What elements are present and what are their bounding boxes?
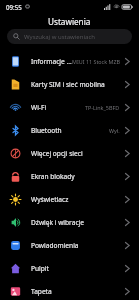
- button[interactable]: Informacje o telefonie: [0, 50, 139, 73]
- staticText: Ekran blokady: [31, 172, 124, 181]
- button[interactable]: Search: [7, 29, 132, 44]
- staticText: MIUI 11 Stock MZB: [72, 58, 120, 65]
- staticText: Bluetooth: [31, 126, 109, 135]
- staticText: Dźwięk i wibracje: [31, 218, 124, 227]
- staticText: Powiadomienia: [31, 241, 124, 250]
- staticText: Więcej opcji sieci: [31, 149, 124, 158]
- staticText: Wyszukaj w ustawieniach: [24, 33, 95, 41]
- staticText: Informacje o telefonie: [31, 57, 72, 66]
- button[interactable]: Dźwięk i wibracje: [0, 211, 139, 234]
- staticText: TP-Link_5BFD: [85, 104, 120, 111]
- button[interactable]: Wi-Fi: [0, 96, 139, 119]
- button[interactable]: Bluetooth: [0, 119, 139, 142]
- button[interactable]: Pulpit: [0, 257, 139, 280]
- staticText: Ustawienia: [48, 16, 91, 27]
- button[interactable]: Karty SIM i sieć mobilna: [0, 73, 139, 96]
- staticText: Wyświetlacz: [31, 195, 124, 204]
- staticText: Wył.: [109, 127, 120, 134]
- button[interactable]: Wyświetlacz: [0, 188, 139, 211]
- button[interactable]: Powiadomienia: [0, 234, 139, 257]
- staticText: 09:55: [6, 3, 22, 11]
- other: Search: [13, 33, 20, 40]
- staticText: Wi-Fi: [31, 103, 85, 112]
- staticText: Pulpit: [31, 264, 124, 273]
- other: Notification: [25, 4, 30, 9]
- button[interactable]: Ekran blokady: [0, 165, 139, 188]
- button[interactable]: Więcej opcji sieci: [0, 142, 139, 165]
- button[interactable]: Tapeta: [0, 280, 139, 300]
- staticText: Tapeta: [31, 287, 124, 296]
- staticText: Karty SIM i sieć mobilna: [31, 80, 124, 89]
- other: Battery: [122, 4, 133, 10]
